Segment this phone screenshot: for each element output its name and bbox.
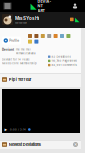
button[interactable]: Play [4,126,8,132]
staticText: ◣ [75,16,80,23]
staticText: Needs Core Membership [2,62,37,65]
button[interactable]: Account [70,0,80,12]
staticText: Female/Canada [16,52,35,55]
staticText: me me me! [15,22,27,25]
staticText: DEVIANT [37,0,51,8]
button[interactable]: Close [72,141,79,148]
staticText: × [74,142,77,147]
staticText: ◣ [30,1,36,11]
staticText: MisSYosHi [15,15,39,21]
staticText: 116,780 Pageviews [51,59,76,62]
button[interactable]: Profile [2,36,21,44]
staticText: ART [37,8,44,13]
button[interactable]: Menu [1,0,14,12]
staticText: 0:00 / 3:14 [10,128,26,131]
staticText: Deviant [2,48,14,51]
staticText: Profile [9,39,19,42]
staticText: Deviant for 14 Years [2,58,29,61]
staticText: Pipi Terreur [9,77,32,82]
staticText: ▸ [4,126,7,133]
staticText: 86,991 Comments [51,63,76,67]
staticText: me me me! [16,48,31,51]
staticText: 82 Deviations [51,55,70,58]
staticText: Newest Deviations [9,142,41,147]
